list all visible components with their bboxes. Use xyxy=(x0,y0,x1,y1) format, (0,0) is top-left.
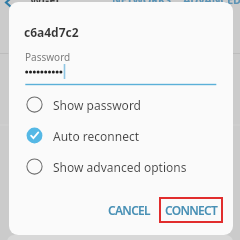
staticText: CANCEL xyxy=(108,202,150,218)
button[interactable]: CONNECT xyxy=(161,199,221,221)
button[interactable]: Wi-Fi xyxy=(30,0,60,8)
staticText: Wi-Fi xyxy=(30,0,60,8)
staticText: Auto reconnect xyxy=(53,128,139,144)
staticText: NETWORKS xyxy=(112,0,171,7)
button[interactable]: NETWORKS xyxy=(112,0,171,7)
button[interactable]: Auto reconnect xyxy=(9,120,233,151)
button[interactable]: Show advanced options xyxy=(9,151,233,182)
button[interactable]: ADVANCED xyxy=(183,0,240,7)
staticText: Show password xyxy=(53,97,141,113)
staticText: c6a4d7c2 xyxy=(24,24,79,40)
button[interactable]: Back xyxy=(1,0,15,10)
staticText: ADVANCED xyxy=(183,0,240,7)
button[interactable]: CANCEL xyxy=(105,197,153,222)
button[interactable]: Show password xyxy=(9,89,233,120)
staticText: Show advanced options xyxy=(53,159,187,175)
staticText: Password xyxy=(25,50,71,64)
staticText: CONNECT xyxy=(165,202,218,218)
